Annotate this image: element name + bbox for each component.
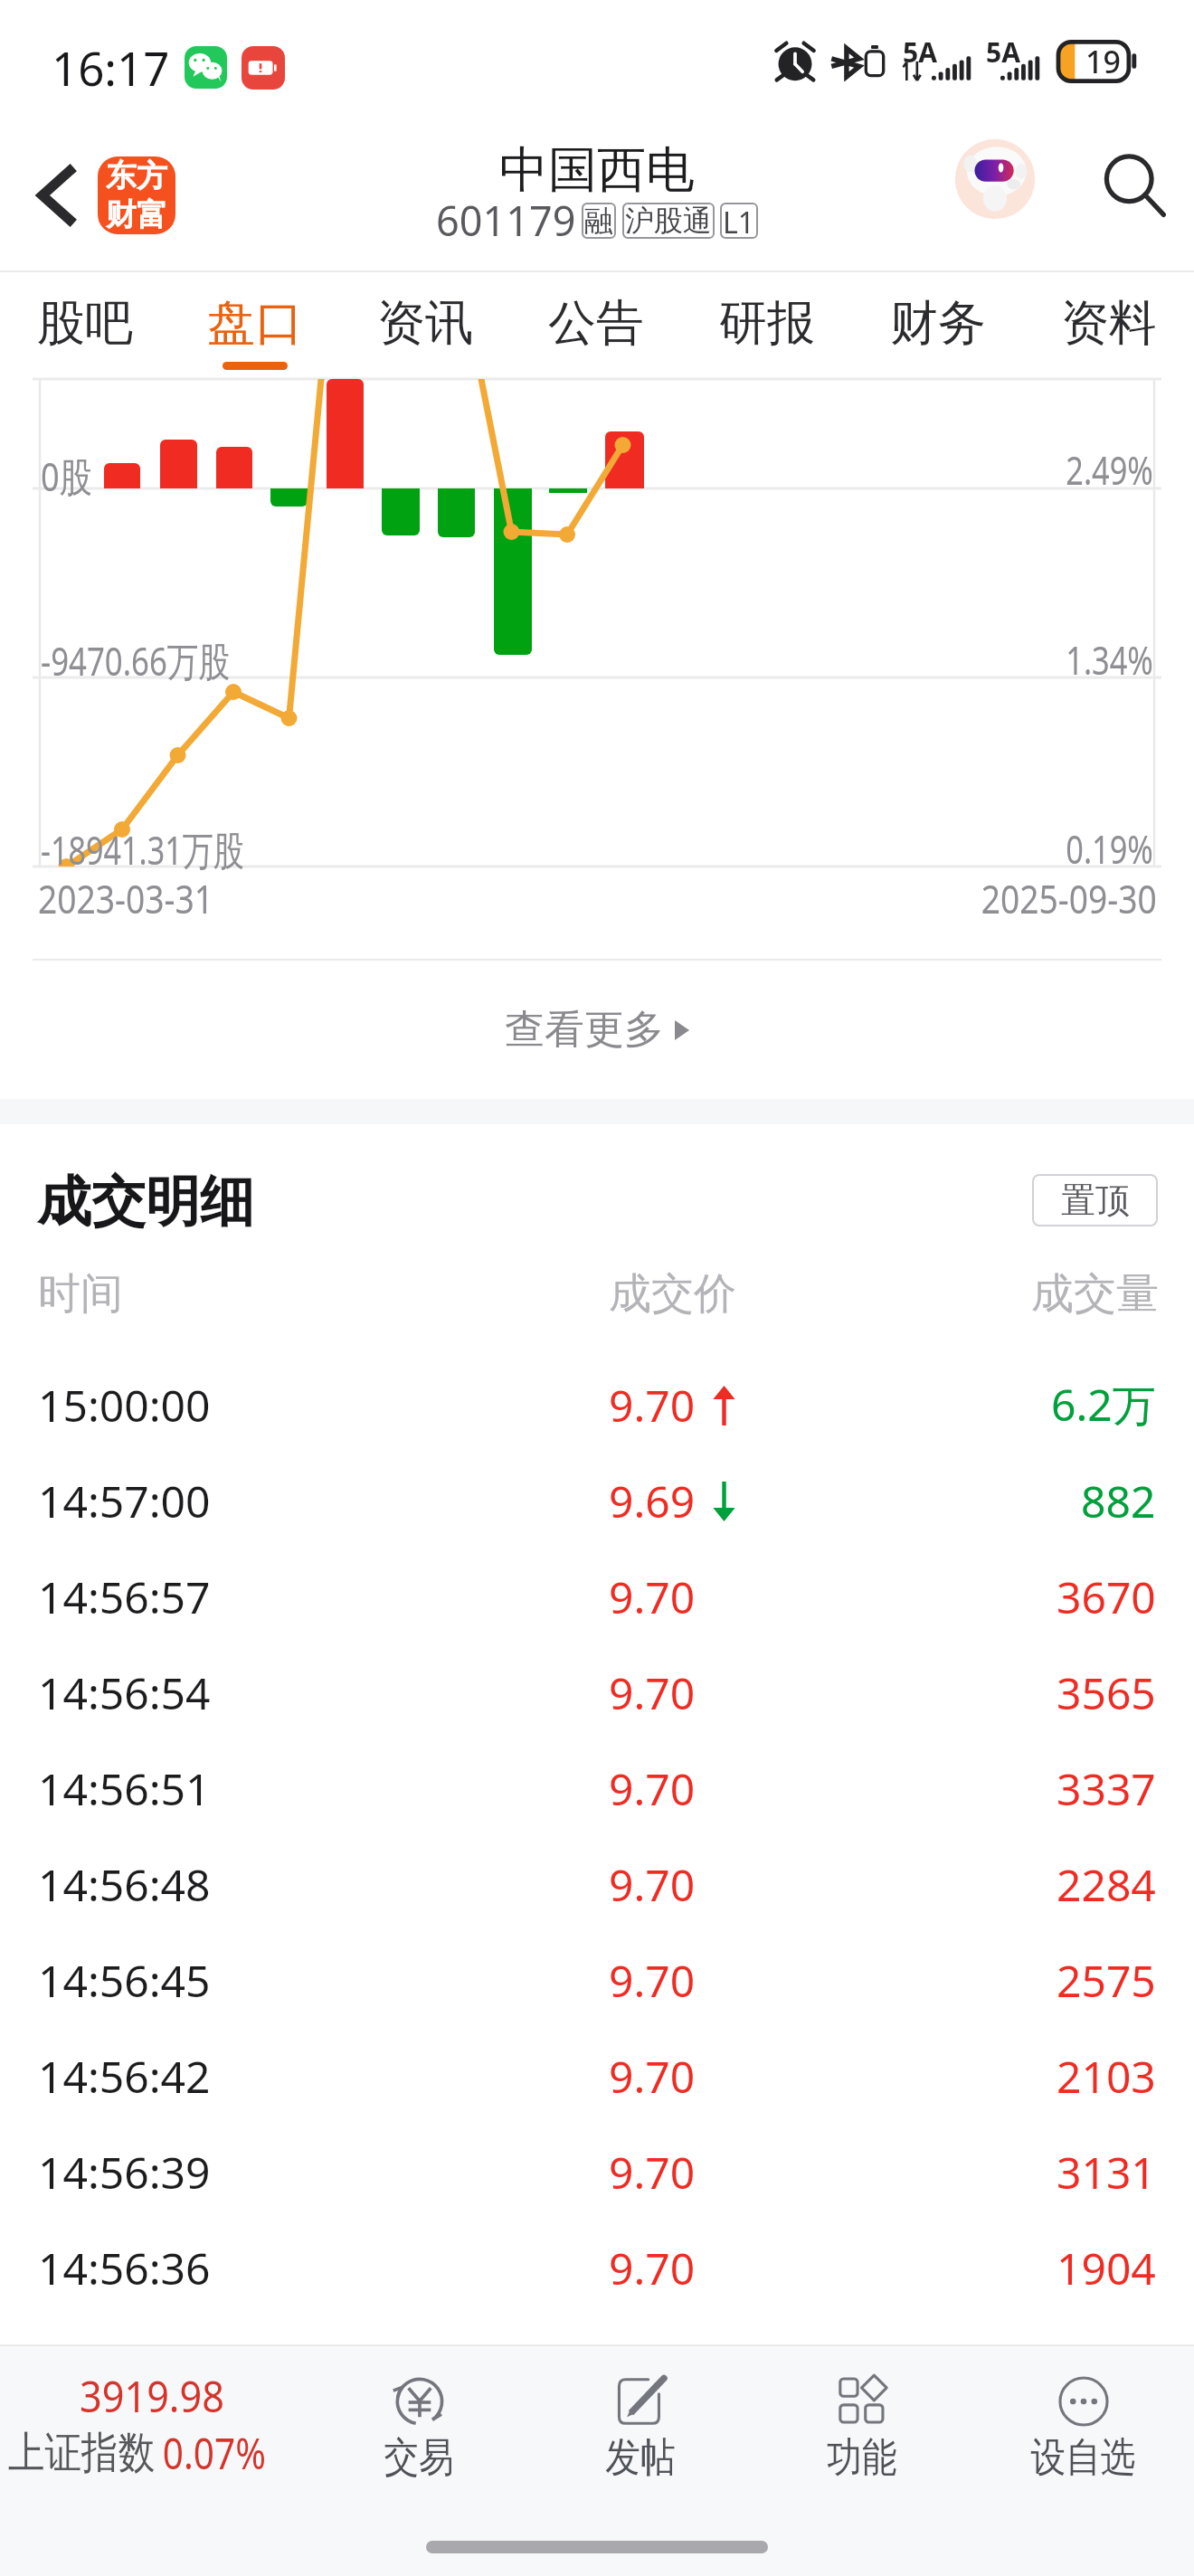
button[interactable]: 14:56:51	[0, 1740, 1194, 1836]
button[interactable]: 功能	[751, 2346, 972, 2516]
button[interactable]: 14:56:39	[0, 2124, 1194, 2220]
staticText: 2575	[1057, 1951, 1156, 2010]
staticText: 中国西电	[499, 139, 695, 201]
staticText: 资讯	[377, 293, 473, 354]
staticText: 3919.98	[80, 2366, 225, 2425]
staticText: 0股	[41, 449, 93, 503]
button[interactable]: 股吧	[0, 272, 170, 379]
staticText: 融	[584, 203, 613, 239]
staticText: 股吧	[37, 293, 133, 354]
staticText: 0.07%	[163, 2423, 266, 2482]
staticText: 3131	[1057, 2143, 1156, 2202]
staticText: 功能	[827, 2432, 897, 2484]
staticText: -18941.31万股	[41, 822, 245, 876]
staticText: 上证指数	[8, 2426, 155, 2480]
button[interactable]: 交易	[308, 2346, 529, 2516]
button[interactable]: 设自选	[972, 2346, 1194, 2516]
staticText: 9.70	[609, 2047, 696, 2106]
staticText: 2284	[1057, 1855, 1156, 1914]
staticText: 14:56:42	[38, 2047, 211, 2106]
button[interactable]: 15:00:00	[0, 1357, 1194, 1453]
staticText: 东方	[106, 156, 167, 195]
staticText: 14:56:36	[38, 2239, 211, 2297]
staticText: 14:57:00	[38, 1472, 211, 1530]
button[interactable]: 置顶	[1032, 1174, 1158, 1226]
button[interactable]: 14:56:57	[0, 1548, 1194, 1644]
button[interactable]: 发帖	[529, 2346, 751, 2516]
staticText: L1	[723, 203, 755, 239]
staticText: 成交明细	[37, 1168, 254, 1236]
staticText: 财务	[890, 293, 986, 354]
staticText: 交易	[384, 2432, 454, 2484]
staticText: 研报	[719, 293, 815, 354]
staticText: 14:56:39	[38, 2143, 211, 2202]
staticText: 置顶	[1061, 1179, 1130, 1222]
staticText: 9.69	[609, 1472, 696, 1530]
staticText: 1.34%	[1066, 632, 1153, 687]
staticText: 14:56:45	[38, 1951, 211, 2010]
staticText: 14:56:57	[38, 1567, 211, 1626]
staticText: 882	[1081, 1472, 1156, 1530]
staticText: 14:56:48	[38, 1855, 211, 1914]
staticText: 2023-03-31	[38, 871, 214, 925]
staticText: 5A	[986, 33, 1020, 71]
staticText: 成交价	[609, 1267, 736, 1321]
button[interactable]: 14:56:45	[0, 1932, 1194, 2028]
staticText: 9.70	[609, 1567, 696, 1626]
staticText: 9.70	[609, 1855, 696, 1914]
staticText: 2.49%	[1066, 442, 1153, 497]
staticText: 发帖	[605, 2432, 675, 2484]
staticText: 3337	[1057, 1759, 1156, 1818]
staticText: 成交量	[1031, 1267, 1159, 1321]
staticText: 0.19%	[1066, 821, 1153, 876]
staticText: 9.70	[609, 2239, 696, 2297]
staticText: 14:56:51	[38, 1759, 211, 1818]
staticText: 2025-09-30	[981, 871, 1157, 925]
staticText: 设自选	[1031, 2432, 1136, 2484]
staticText: 时间	[38, 1267, 123, 1321]
button[interactable]: 14:56:42	[0, 2028, 1194, 2124]
staticText: 3670	[1057, 1567, 1156, 1626]
button[interactable]: 查看更多	[0, 961, 1194, 1099]
button[interactable]: 14:56:54	[0, 1644, 1194, 1740]
staticText: 1904	[1057, 2239, 1156, 2297]
staticText: 盘口	[207, 293, 303, 354]
staticText: 9.70	[609, 1376, 696, 1435]
button[interactable]: 14:57:00	[0, 1453, 1194, 1548]
staticText: 9.70	[609, 1759, 696, 1818]
button[interactable]: 3919.98	[0, 2346, 308, 2516]
staticText: 601179	[436, 193, 576, 248]
staticText: 9.70	[609, 1663, 696, 1722]
staticText: 资料	[1061, 293, 1157, 354]
staticText: 沪股通	[625, 203, 712, 239]
staticText: 9.70	[609, 1951, 696, 2010]
staticText: -9470.66万股	[41, 633, 230, 687]
button[interactable]: Search	[1090, 141, 1179, 230]
button[interactable]: Back	[16, 156, 96, 235]
button[interactable]: 14:56:36	[0, 2220, 1194, 2316]
staticText: 9.70	[609, 2143, 696, 2202]
button[interactable]: 研报	[681, 272, 852, 379]
button[interactable]: 资讯	[340, 272, 510, 379]
staticText: 19	[1085, 41, 1121, 82]
button[interactable]: 14:56:48	[0, 1836, 1194, 1932]
staticText: 查看更多	[505, 1005, 664, 1055]
button[interactable]: 盘口	[170, 272, 340, 379]
button[interactable]: 公告	[510, 272, 681, 379]
button[interactable]: East Money Home	[98, 156, 175, 234]
button[interactable]: 资料	[1023, 272, 1194, 379]
staticText: 公告	[548, 293, 644, 354]
staticText: 6.2万	[1051, 1375, 1156, 1435]
button[interactable]: AI assistant	[952, 137, 1038, 222]
staticText: 5A	[903, 33, 937, 71]
staticText: 3565	[1057, 1663, 1156, 1722]
staticText: 15:00:00	[38, 1376, 211, 1435]
staticText: 14:56:54	[38, 1663, 211, 1722]
staticText: 2103	[1057, 2047, 1156, 2106]
button[interactable]: 财务	[852, 272, 1023, 379]
staticText: 16:17	[52, 36, 170, 99]
staticText: 财富	[106, 195, 167, 234]
